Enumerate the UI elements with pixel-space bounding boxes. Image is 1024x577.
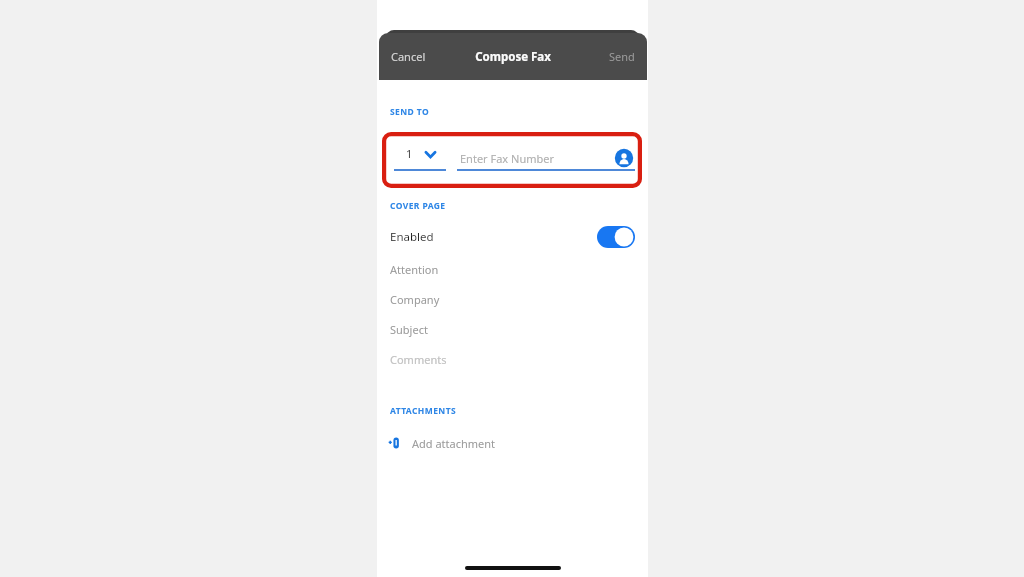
button[interactable]: Company: [377, 286, 648, 312]
staticText: Compose Fax: [475, 49, 551, 65]
staticText: Enabled: [390, 229, 434, 245]
button[interactable]: Enter Fax Number: [457, 144, 635, 172]
button[interactable]: Add attachment: [385, 430, 496, 456]
button[interactable]: Cancel: [385, 43, 432, 70]
staticText: Subject: [390, 322, 428, 337]
staticText: Comments: [390, 352, 447, 367]
button[interactable]: 1: [394, 146, 450, 172]
staticText: Company: [390, 292, 440, 307]
staticText: Cancel: [391, 49, 426, 64]
button[interactable]: Subject: [377, 316, 648, 342]
button[interactable]: Send: [603, 43, 641, 70]
staticText: Send: [609, 49, 635, 64]
staticText: Attention: [390, 262, 439, 277]
staticText: ATTACHMENTS: [390, 405, 457, 417]
button[interactable]: Choose contact: [614, 148, 634, 168]
staticText: Add attachment: [412, 436, 496, 451]
button[interactable]: Comments: [377, 346, 648, 372]
button[interactable]: Attention: [377, 256, 648, 282]
staticText: 1: [406, 146, 413, 161]
staticText: COVER PAGE: [390, 200, 446, 212]
staticText: Enter Fax Number: [460, 151, 555, 166]
button[interactable]: Enabled: [377, 222, 648, 252]
staticText: SEND TO: [390, 106, 430, 118]
